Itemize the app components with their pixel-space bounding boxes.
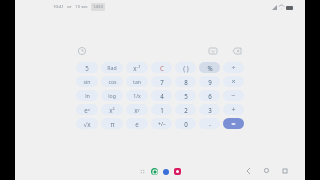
button[interactable]: + [223, 104, 244, 115]
button[interactable]: xʸ [126, 104, 148, 115]
button[interactable]: Camera [174, 168, 181, 175]
staticText: C [160, 64, 164, 72]
button[interactable]: Back [244, 166, 253, 175]
staticText: 5 [85, 64, 89, 72]
button[interactable]: All apps [139, 168, 146, 175]
staticText: π [110, 120, 115, 128]
staticText: eˣ [84, 106, 90, 114]
staticText: 0 [184, 120, 188, 128]
button[interactable]: +/− [151, 118, 172, 129]
button[interactable]: sin [76, 76, 98, 87]
button[interactable]: History [76, 45, 87, 56]
button[interactable]: log [101, 90, 123, 101]
button[interactable]: − [223, 90, 244, 101]
button[interactable]: C [151, 62, 172, 73]
button[interactable]: 8 [175, 76, 196, 87]
staticText: ÷ [231, 63, 236, 73]
button[interactable]: √x [76, 118, 98, 129]
button[interactable]: 5 [76, 62, 98, 73]
button[interactable]: = [223, 118, 244, 129]
staticText: + [231, 105, 236, 115]
staticText: e [135, 120, 139, 128]
button[interactable]: Phone [151, 168, 158, 175]
button[interactable]: 1/x [126, 90, 148, 101]
staticText: = [231, 119, 236, 129]
button[interactable]: 1 [151, 104, 172, 115]
staticText: +/− [158, 120, 166, 127]
button[interactable]: 3 [199, 104, 220, 115]
button[interactable]: Keyboard [207, 45, 218, 56]
staticText: 1/x [133, 92, 141, 99]
staticText: % [207, 64, 213, 72]
staticText: 10:41 [53, 4, 64, 10]
staticText: 2 [184, 106, 188, 114]
button[interactable]: Rad [101, 62, 123, 73]
staticText: 9 [208, 78, 212, 86]
staticText: 7 [160, 78, 164, 86]
button[interactable]: 6 [199, 90, 220, 101]
staticText: ( ) [183, 64, 189, 72]
button[interactable]: ( ) [175, 62, 196, 73]
button[interactable]: ÷ [223, 62, 244, 73]
staticText: 4 [160, 92, 164, 100]
staticText: or [67, 4, 72, 10]
staticText: tan [133, 78, 141, 85]
button[interactable]: 7 [151, 76, 172, 87]
staticText: − [231, 91, 236, 101]
staticText: sin [83, 78, 91, 85]
staticText: √x [83, 120, 91, 128]
staticText: × [231, 77, 236, 87]
staticText: 8 [184, 78, 188, 86]
button[interactable]: 2 [175, 104, 196, 115]
staticText: 3 [208, 106, 212, 114]
staticText: xʸ [134, 106, 140, 114]
button[interactable]: tan [126, 76, 148, 87]
staticText: 15 sec [75, 4, 88, 10]
button[interactable]: eˣ [76, 104, 98, 115]
staticText: 5 [184, 92, 188, 100]
button[interactable]: 5 [175, 90, 196, 101]
staticText: log [108, 92, 116, 99]
button[interactable]: x² [101, 104, 123, 115]
button[interactable]: Backspace [231, 45, 242, 56]
button[interactable]: 9 [199, 76, 220, 87]
button[interactable]: e [126, 118, 148, 129]
staticText: cos [108, 78, 117, 85]
staticText: x⁻¹ [133, 64, 141, 72]
button[interactable]: % [199, 62, 220, 73]
button[interactable]: . [199, 118, 220, 129]
staticText: . [209, 119, 211, 129]
button[interactable]: 0 [175, 118, 196, 129]
staticText: Rad [107, 64, 117, 71]
button[interactable]: π [101, 118, 123, 129]
button[interactable]: ln [76, 90, 98, 101]
button[interactable]: 4 [151, 90, 172, 101]
staticText: 1433 [93, 4, 103, 10]
staticText: 1 [160, 106, 164, 114]
button[interactable]: x⁻¹ [126, 62, 148, 73]
staticText: 6 [208, 92, 212, 100]
button[interactable]: cos [101, 76, 123, 87]
button[interactable]: Recents [280, 166, 289, 175]
staticText: ln [85, 92, 90, 99]
button[interactable]: Home [262, 166, 271, 175]
button[interactable]: App [163, 169, 169, 175]
button[interactable]: × [223, 76, 244, 87]
staticText: x² [109, 106, 115, 114]
